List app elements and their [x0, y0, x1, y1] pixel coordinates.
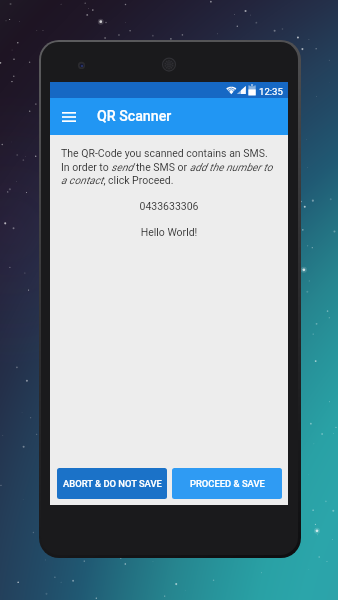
staticText: QR Scanner — [97, 108, 172, 125]
button[interactable]: ABORT & DO NOT SAVE — [57, 468, 167, 499]
button[interactable]: PROCEED & SAVE — [172, 468, 282, 499]
button[interactable]: Open navigation drawer — [62, 102, 76, 132]
staticText: 12:35 — [259, 86, 283, 97]
staticText: The QR-Code you scanned contains an SMS.… — [61, 147, 277, 186]
staticText: ABORT & DO NOT SAVE — [63, 478, 162, 489]
staticText: 0433633306 — [61, 200, 277, 212]
staticText: PROCEED & SAVE — [190, 478, 265, 489]
staticText: Hello World! — [61, 226, 277, 238]
